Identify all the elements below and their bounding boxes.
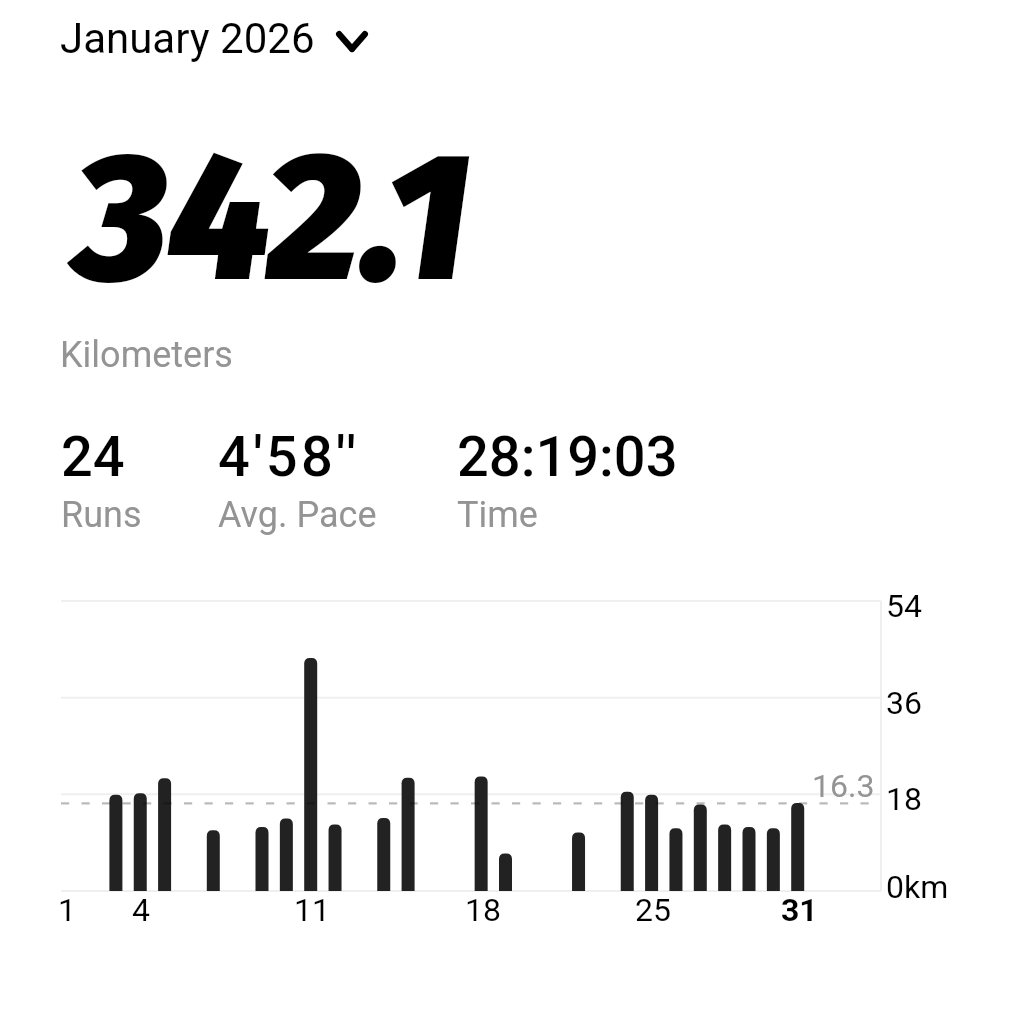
staticText: 31 [781, 891, 818, 927]
staticText: 4'58'' [218, 424, 360, 490]
staticText: 28:19:03 [457, 424, 678, 490]
staticText: 25 [635, 891, 671, 927]
staticText: 18 [886, 780, 922, 818]
staticText: 1 [58, 891, 76, 927]
button[interactable]: 28:19:03 [457, 424, 678, 490]
button[interactable]: 24 [61, 424, 125, 490]
staticText: Kilometers [60, 334, 233, 376]
staticText: 0km [886, 868, 949, 906]
button[interactable]: January 2026 [52, 6, 368, 55]
other: Change month [336, 31, 368, 52]
staticText: 342.1 [74, 111, 471, 327]
staticText: Avg. Pace [218, 494, 377, 536]
staticText: 54 [886, 587, 922, 625]
staticText: 36 [886, 684, 922, 722]
staticText: 4 [132, 891, 150, 927]
staticText: 16.3 [812, 767, 875, 805]
staticText: 11 [294, 891, 330, 927]
button[interactable]: 4'58'' [218, 424, 360, 490]
staticText: Time [457, 494, 538, 536]
staticText: Runs [61, 494, 142, 536]
staticText: 24 [61, 424, 125, 490]
staticText: January 2026 [60, 14, 315, 63]
staticText: 18 [465, 891, 501, 927]
